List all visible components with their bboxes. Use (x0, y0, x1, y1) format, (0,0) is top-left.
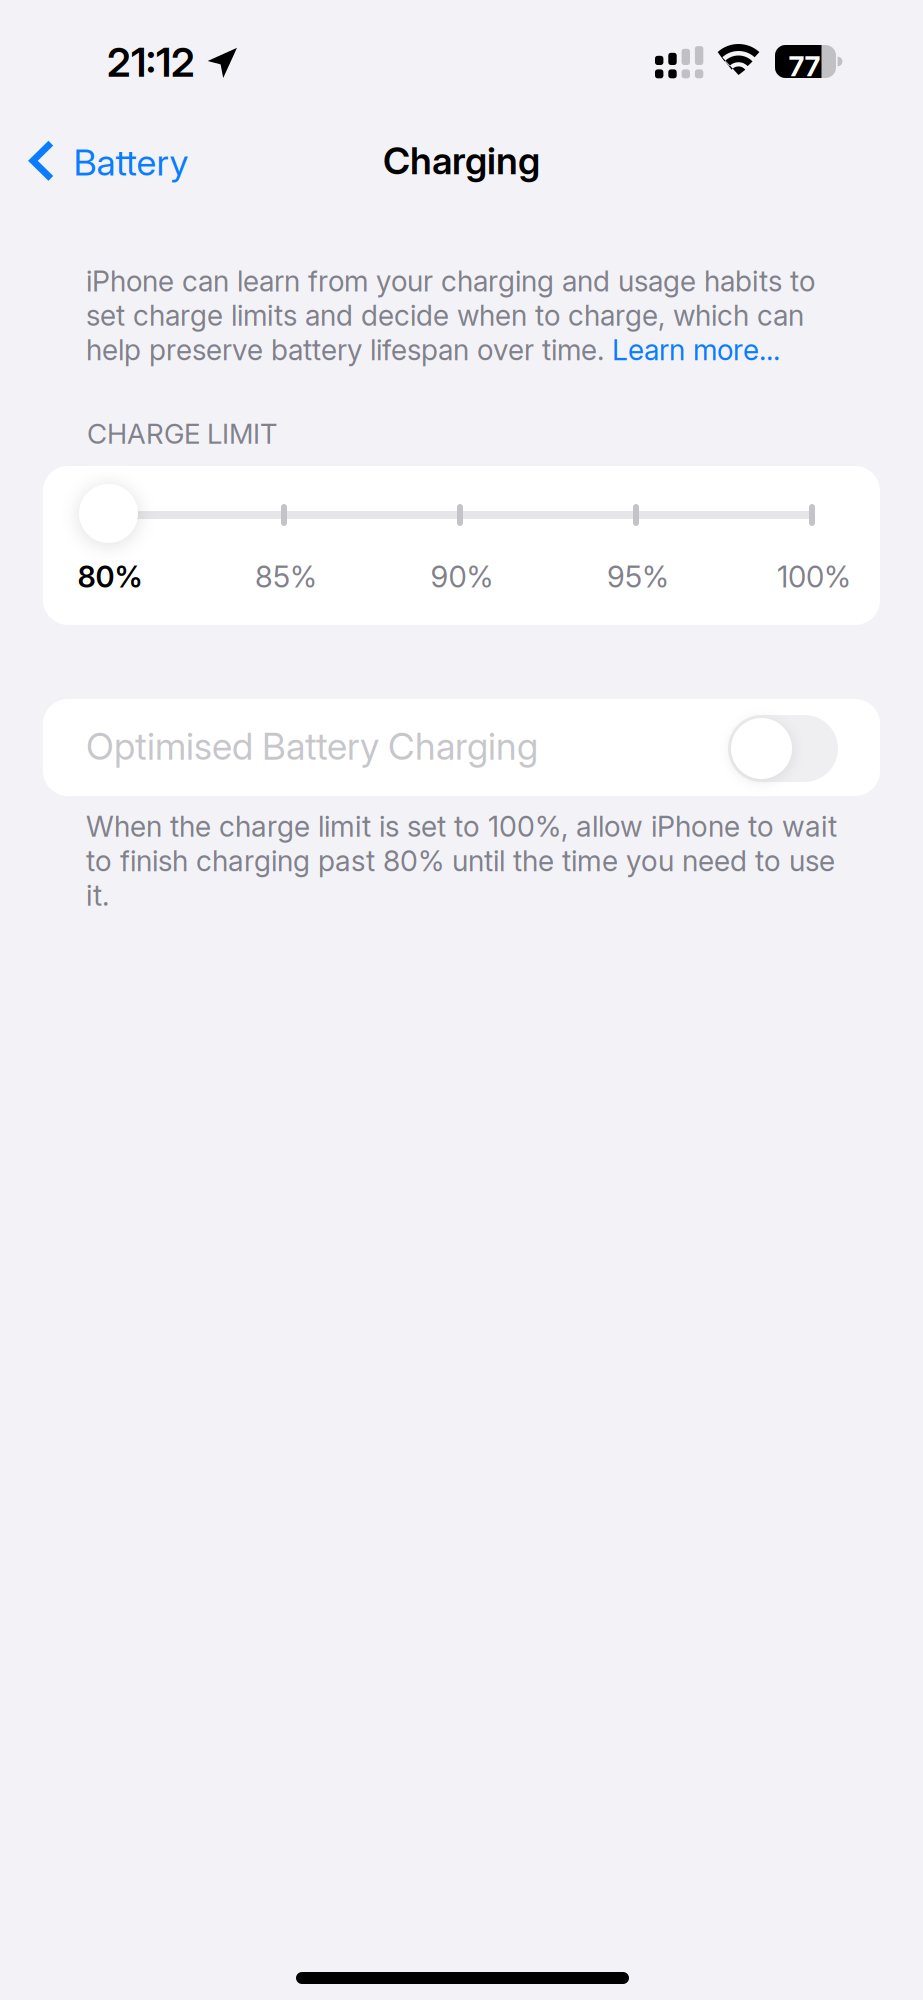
staticText: 100% (777, 559, 851, 594)
staticText: Optimised Battery Charging (86, 724, 538, 768)
staticText: Charging (383, 138, 540, 183)
staticText: 80% (77, 559, 142, 594)
button[interactable]: Battery (0, 125, 204, 201)
staticText: 85% (255, 559, 317, 594)
staticText: it. (86, 878, 109, 913)
staticText: to finish charging past 80% until the ti… (86, 843, 835, 878)
staticText: Learn more... (612, 333, 780, 367)
staticText: Battery (73, 140, 188, 184)
staticText: 77 (788, 49, 820, 83)
staticText: 95% (607, 559, 669, 594)
staticText: 90% (430, 559, 493, 594)
staticText: iPhone can learn from your charging and … (86, 264, 815, 298)
staticText: help preserve battery lifespan over time… (86, 333, 612, 367)
staticText: 21:12 (107, 38, 195, 86)
staticText: When the charge limit is set to 100%, al… (86, 809, 837, 843)
button[interactable]: Optimised Battery Charging (43, 699, 880, 796)
staticText: CHARGE LIMIT (87, 417, 277, 450)
staticText: set charge limits and decide when to cha… (86, 298, 804, 333)
button[interactable]: Learn more... (612, 333, 780, 367)
